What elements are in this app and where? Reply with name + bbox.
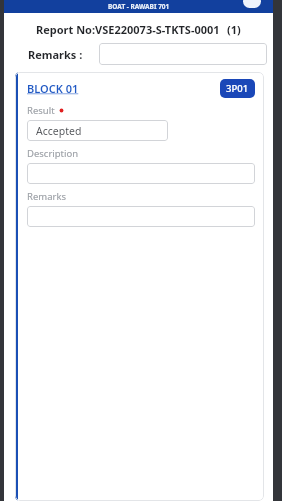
button[interactable]: [27, 206, 255, 227]
staticText: Remarks: [27, 190, 67, 203]
button[interactable]: [99, 43, 267, 65]
staticText: BOAT - RAWABI 701: [108, 2, 170, 11]
staticText: Accepted: [36, 124, 82, 138]
staticText: 3P01: [226, 82, 249, 95]
staticText: Report No:VSE220073-S-TKTS-0001: [36, 22, 220, 37]
staticText: (1): [227, 22, 241, 37]
button[interactable]: [27, 163, 255, 184]
button[interactable]: BLOCK 01: [15, 72, 264, 501]
staticText: Result: [27, 104, 55, 117]
button[interactable]: BLOCK 01: [27, 81, 79, 96]
staticText: Remarks :: [28, 47, 83, 62]
staticText: Description: [27, 147, 79, 160]
button[interactable]: Account: [243, 0, 261, 8]
button[interactable]: Accepted: [27, 120, 168, 141]
button[interactable]: 3P01: [220, 79, 255, 98]
